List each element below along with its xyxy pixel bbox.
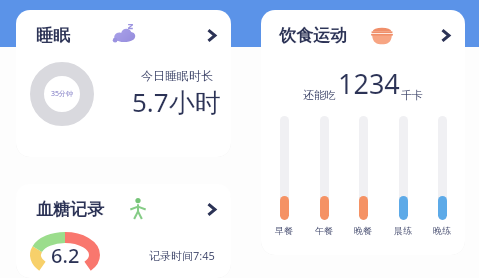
staticText: 晚练: [433, 225, 451, 236]
staticText: 还能吃: [303, 88, 336, 102]
staticText: 饮食运动: [279, 25, 347, 46]
staticText: 血糖记录: [36, 199, 104, 220]
button[interactable]: [399, 116, 408, 220]
button[interactable]: [280, 116, 289, 220]
other: 血糖记录: [126, 197, 150, 221]
button[interactable]: 睡眠: [16, 18, 231, 52]
staticText: 午餐: [315, 225, 333, 236]
staticText: 睡眠: [36, 25, 70, 46]
button[interactable]: [359, 116, 368, 220]
other: 睡眠: [112, 22, 138, 48]
button[interactable]: 血糖记录: [16, 192, 231, 226]
other: 饮食运动: [369, 22, 395, 48]
staticText: 千卡: [401, 88, 423, 102]
staticText: 晚餐: [354, 225, 372, 236]
staticText: 晨练: [394, 225, 412, 236]
staticText: 记录时间7:45: [149, 248, 215, 263]
staticText: 1234: [338, 65, 400, 102]
staticText: 6.2: [51, 242, 80, 269]
staticText: 早餐: [275, 225, 293, 236]
button[interactable]: [320, 116, 329, 220]
staticText: 今日睡眠时长: [141, 68, 213, 83]
staticText: 35分钟: [51, 89, 74, 99]
button[interactable]: 饮食运动: [261, 18, 465, 52]
button[interactable]: [438, 116, 447, 220]
button[interactable]: 6.2: [30, 232, 100, 278]
staticText: 5.7小时: [132, 84, 221, 120]
button[interactable]: 35分钟: [30, 62, 94, 126]
